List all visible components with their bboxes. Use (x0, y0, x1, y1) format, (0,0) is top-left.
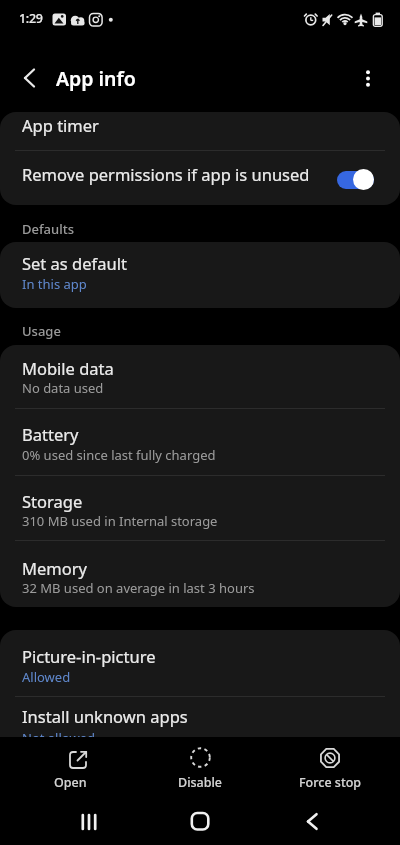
staticText: Set as default (22, 252, 127, 274)
staticText: Storage (22, 490, 83, 512)
staticText: Memory (22, 557, 87, 579)
staticText: App timer (22, 114, 99, 136)
staticText: Usage (22, 322, 61, 340)
staticText: Disable (178, 774, 223, 791)
button[interactable]: Memory (0, 540, 400, 607)
button[interactable]: Storage (0, 475, 400, 540)
button[interactable]: Install unknown apps (0, 696, 400, 737)
staticText: Remove permissions if app is unused (22, 163, 310, 185)
staticText: Install unknown apps (22, 705, 188, 727)
button[interactable]: Picture-in-picture (0, 630, 400, 696)
staticText: No data used (22, 379, 104, 397)
button[interactable] (170, 800, 230, 845)
staticText: Picture-in-picture (22, 645, 156, 667)
button[interactable]: Force stop (290, 740, 370, 792)
button[interactable]: Open (30, 740, 110, 792)
button[interactable]: Set as default (0, 242, 400, 308)
staticText: 310 MB used in Internal storage (22, 512, 218, 530)
staticText: 32 MB used on average in last 3 hours (22, 579, 255, 597)
staticText: Defaults (22, 220, 75, 238)
staticText: Mobile data (22, 357, 114, 379)
staticText: Force stop (299, 774, 362, 791)
staticText: Battery (22, 423, 79, 445)
staticText: Allowed (22, 668, 71, 686)
button[interactable]: Disable (160, 740, 241, 792)
staticText: App info (56, 65, 136, 92)
button[interactable] (12, 62, 52, 96)
button[interactable] (337, 171, 374, 189)
staticText: 1:29 (19, 10, 43, 27)
staticText: Open (54, 774, 87, 791)
button[interactable]: Mobile data (0, 345, 400, 408)
button[interactable] (59, 800, 119, 845)
button[interactable]: Battery (0, 408, 400, 475)
staticText: 0% used since last fully charged (22, 446, 216, 464)
button[interactable] (281, 800, 341, 845)
button[interactable]: App timer (0, 112, 400, 150)
staticText: In this app (22, 275, 87, 293)
button[interactable]: Remove permissions if app is unused (0, 150, 400, 205)
staticText: Not allowed (22, 729, 95, 737)
button[interactable] (350, 60, 388, 96)
